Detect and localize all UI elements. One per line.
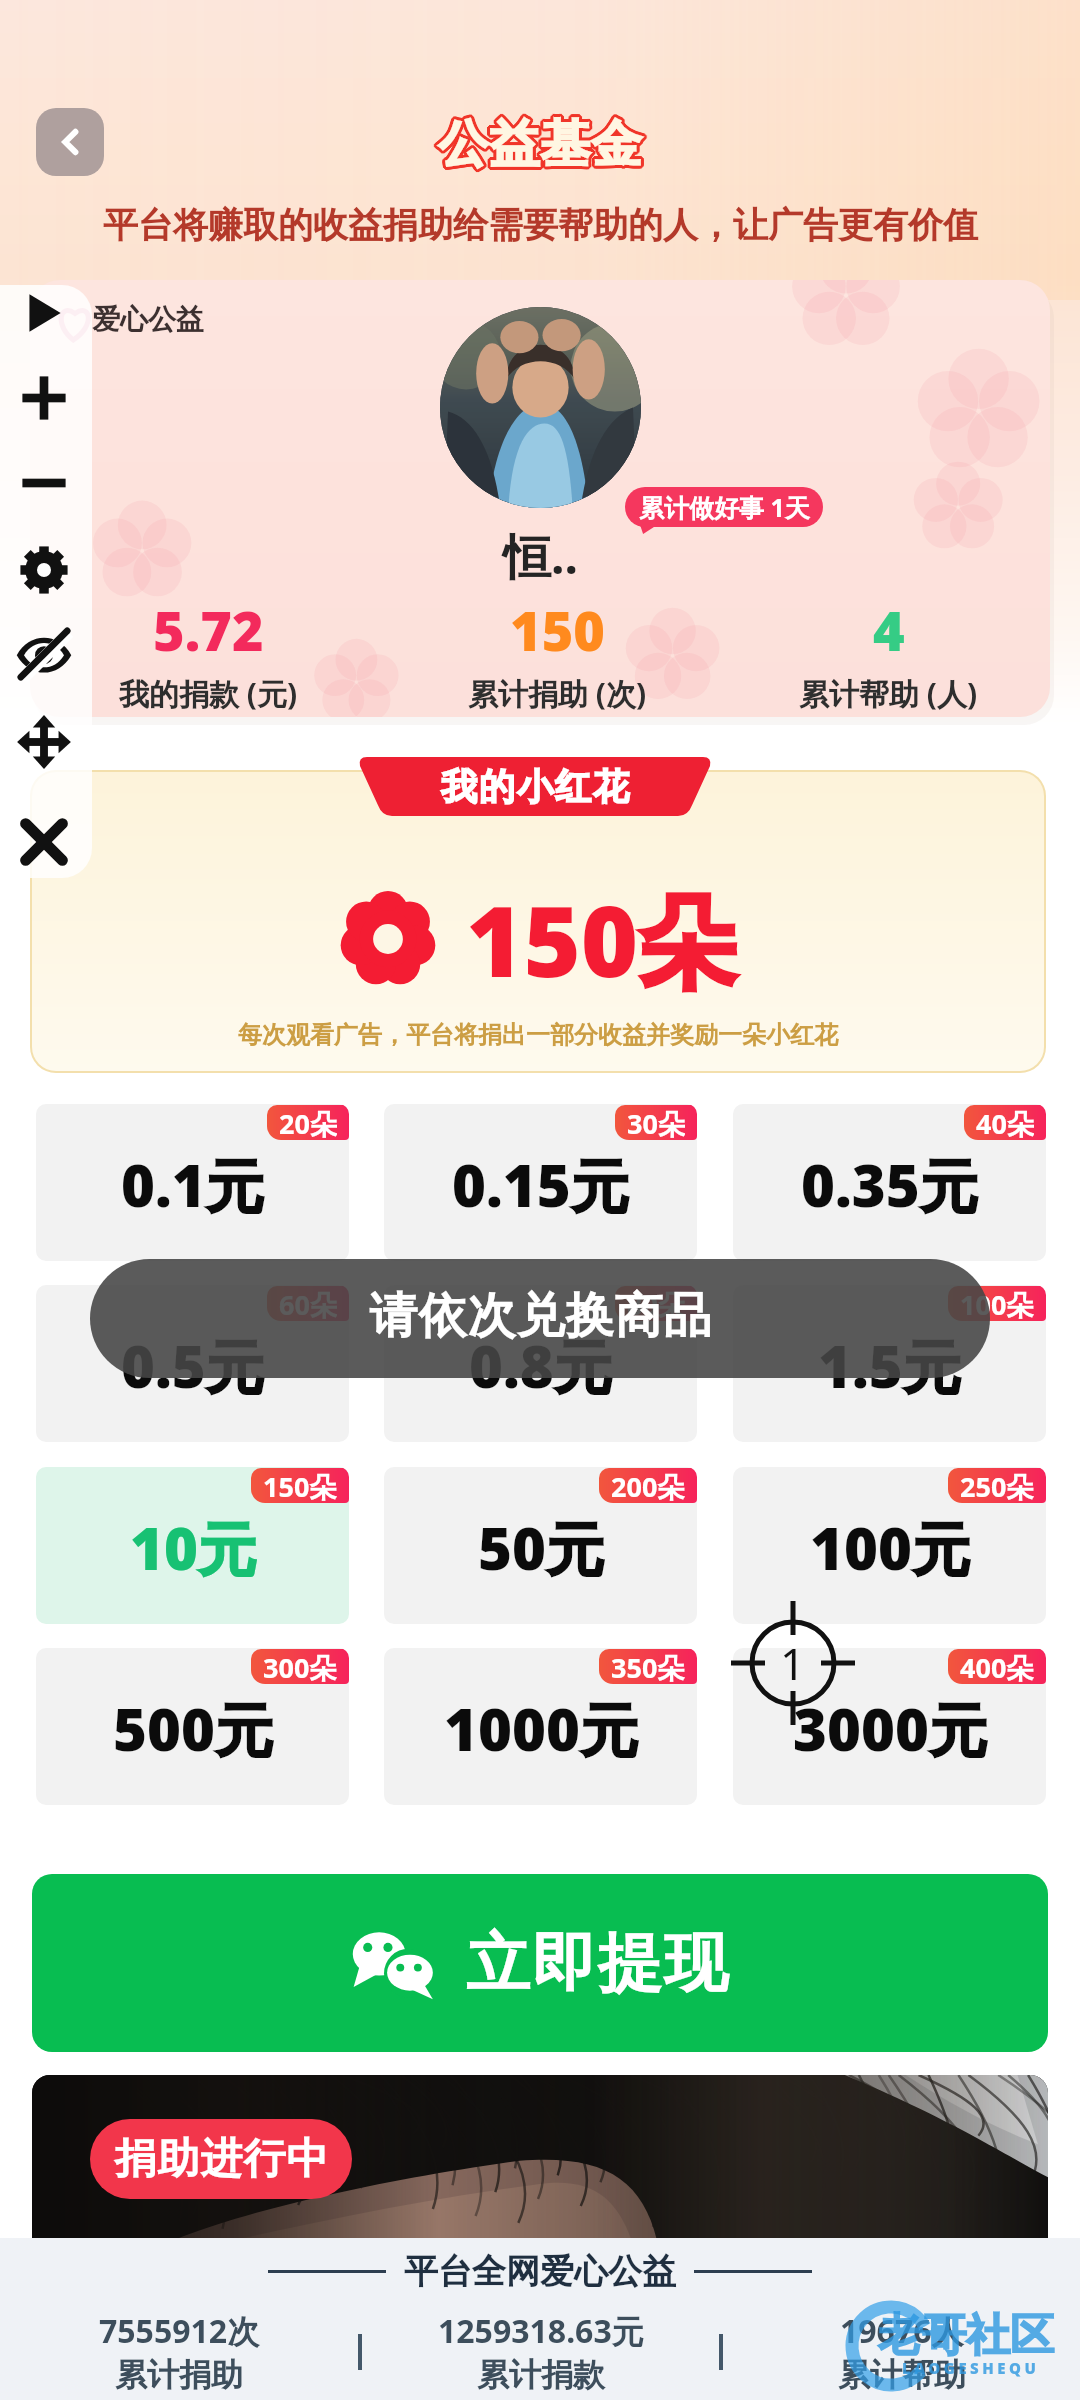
button[interactable]: 100元 — [733, 1467, 1046, 1624]
staticText: 公益基金 — [440, 114, 644, 177]
button[interactable]: 10元 — [36, 1467, 349, 1624]
staticText: 1000元 — [444, 1689, 638, 1768]
staticText: 公益基金 — [437, 115, 641, 178]
staticText: 平台将赚取的收益捐助给需要帮助的人，让广告更有价值 — [103, 203, 978, 247]
staticText: 公益基金 — [439, 111, 643, 174]
staticText: 1259318.63元 — [438, 2309, 644, 2353]
staticText: 公益基金 — [437, 112, 641, 175]
button[interactable]: Move — [16, 714, 72, 770]
staticText: 恒.. — [503, 523, 578, 589]
staticText: 4 — [873, 593, 905, 667]
button[interactable]: 0.15元 — [384, 1104, 697, 1261]
staticText: 150朵 — [466, 872, 737, 1006]
button[interactable]: 0.1元 — [36, 1104, 349, 1261]
staticText: 100元 — [810, 1508, 970, 1587]
button[interactable]: 50元 — [384, 1467, 697, 1624]
button[interactable]: Record — [18, 287, 70, 339]
staticText: 19676人 — [840, 2309, 964, 2353]
staticText: 公益基金 — [439, 110, 643, 173]
button[interactable]: 1000元 — [384, 1648, 697, 1805]
staticText: 400朵 — [960, 1649, 1034, 1684]
staticText: 公益基金 — [440, 115, 644, 178]
staticText: LAOGESHEQU — [902, 2358, 1040, 2378]
staticText: 公益基金 — [440, 112, 644, 175]
staticText: 累计捐助 (次) — [468, 673, 647, 714]
staticText: 累计帮助 — [838, 2355, 966, 2395]
staticText: 累计捐款 — [477, 2355, 605, 2395]
staticText: 公益基金 — [438, 116, 642, 179]
staticText: 0.1元 — [121, 1145, 264, 1224]
staticText: 我的小红花 — [440, 764, 630, 809]
button[interactable]: Recorder tools — [0, 285, 92, 878]
staticText: 公益基金 — [438, 115, 642, 178]
staticText: 公益基金 — [440, 113, 644, 176]
staticText: 10元 — [130, 1508, 256, 1587]
staticText: 0.8元 — [469, 1326, 612, 1405]
staticText: 累计捐助 — [115, 2355, 243, 2395]
staticText: 公益基金 — [436, 113, 640, 176]
staticText: 公益基金 — [441, 113, 645, 176]
staticText: 公益基金 — [435, 114, 639, 177]
staticText: 公益基金 — [440, 111, 644, 174]
button[interactable]: Hide — [15, 625, 73, 683]
staticText: 50元 — [478, 1508, 604, 1587]
staticText: 公益基金 — [436, 114, 640, 177]
button[interactable]: 0.35元 — [733, 1104, 1046, 1261]
staticText: 公益基金 — [437, 116, 641, 179]
staticText: 累计做好事 1天 — [639, 490, 810, 524]
button[interactable]: 立即提现 — [32, 1874, 1048, 2052]
staticText: 公益基金 — [439, 113, 643, 176]
staticText: 公益基金 — [435, 113, 639, 176]
staticText: 立即提现 — [465, 1923, 729, 2004]
button[interactable]: 3000元 — [733, 1648, 1046, 1805]
staticText: 0.35元 — [801, 1145, 978, 1224]
staticText: 公益基金 — [438, 114, 642, 177]
staticText: 我的捐款 (元) — [119, 673, 298, 714]
staticText: 公益基金 — [437, 114, 641, 177]
staticText: 公益基金 — [436, 111, 640, 174]
button[interactable]: Settings — [16, 542, 72, 598]
staticText: 150 — [510, 593, 605, 667]
staticText: 爱心公益 — [92, 302, 204, 337]
staticText: 30朵 — [627, 1105, 685, 1140]
staticText: 1.5元 — [818, 1326, 961, 1405]
staticText: 80朵 — [627, 1286, 685, 1321]
staticText: 0.5元 — [121, 1326, 264, 1405]
staticText: 100朵 — [960, 1286, 1034, 1321]
staticText: 200朵 — [611, 1468, 685, 1503]
staticText: 老哥社区 — [878, 2308, 1054, 2363]
staticText: 1 — [780, 1633, 806, 1693]
button[interactable]: Zoom out — [17, 456, 71, 510]
staticText: 0.15元 — [452, 1145, 629, 1224]
button[interactable]: 捐助进行中 — [32, 2075, 1048, 2240]
staticText: 20朵 — [279, 1105, 337, 1140]
button[interactable]: 150朵 — [32, 772, 1044, 1071]
staticText: 累计帮助 (人) — [799, 673, 978, 714]
staticText: 60朵 — [279, 1286, 337, 1321]
staticText: 公益基金 — [439, 116, 643, 179]
staticText: 350朵 — [611, 1649, 685, 1684]
button[interactable]: Close — [17, 815, 71, 869]
button[interactable]: 爱心公益 — [30, 280, 1050, 717]
staticText: 请依次兑换商品 — [369, 1286, 712, 1346]
staticText: 公益基金 — [437, 111, 641, 174]
staticText: 300朵 — [263, 1649, 337, 1684]
button[interactable]: Back — [36, 108, 104, 176]
button[interactable]: 0.8元 — [384, 1285, 697, 1442]
staticText: 3000元 — [793, 1689, 987, 1768]
staticText: 250朵 — [960, 1468, 1034, 1503]
staticText: 公益基金 — [441, 114, 645, 177]
staticText: 公益基金 — [437, 113, 641, 176]
button[interactable]: Zoom in — [17, 371, 71, 425]
staticText: 每次观看广告，平台将捐出一部分收益并奖励一朵小红花 — [238, 1020, 838, 1050]
button[interactable]: 0.5元 — [36, 1285, 349, 1442]
button[interactable]: 500元 — [36, 1648, 349, 1805]
staticText: 5.72 — [153, 593, 264, 667]
staticText: 7555912次 — [99, 2309, 260, 2353]
staticText: 捐助进行中 — [114, 2133, 329, 2186]
staticText: 公益基金 — [438, 113, 642, 176]
staticText: 公益基金 — [438, 112, 642, 175]
staticText: 公益基金 — [436, 112, 640, 175]
staticText: 公益基金 — [439, 114, 643, 177]
button[interactable]: 1.5元 — [733, 1285, 1046, 1442]
